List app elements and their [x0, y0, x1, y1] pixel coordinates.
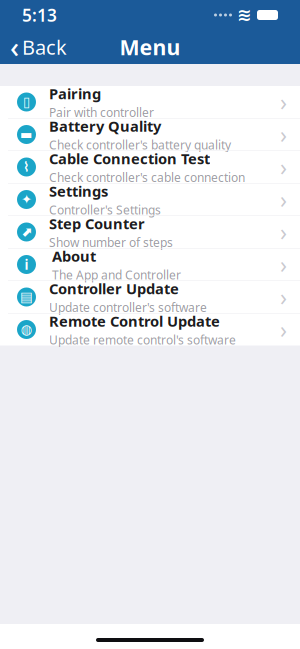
staticText: Controller Update: [49, 279, 179, 298]
staticText: Update controller's software: [49, 299, 207, 315]
button[interactable]: ◍: [0, 313, 300, 345]
staticText: ›: [280, 87, 287, 117]
staticText: ›: [280, 184, 287, 214]
staticText: ≋: [237, 5, 252, 25]
button[interactable]: ⌇: [0, 151, 300, 183]
staticText: ›: [280, 152, 287, 182]
staticText: ▤: [20, 289, 33, 304]
staticText: Check controller's cable connection: [49, 169, 245, 185]
staticText: ◍: [20, 322, 32, 337]
button[interactable]: ▬: [0, 118, 300, 150]
button[interactable]: ✦: [0, 183, 300, 215]
staticText: Menu: [119, 33, 180, 61]
staticText: ›: [280, 217, 287, 247]
staticText: ▬: [20, 127, 33, 142]
staticText: Step Counter: [49, 214, 145, 233]
staticText: Pair with controller: [49, 104, 154, 120]
staticText: ▯: [23, 94, 30, 109]
staticText: Settings: [49, 181, 108, 201]
staticText: ‹: [10, 28, 19, 66]
button[interactable]: ‹: [0, 23, 77, 71]
staticText: Back: [22, 34, 67, 60]
button[interactable]: i: [0, 248, 300, 280]
staticText: Controller's Settings: [49, 202, 161, 218]
staticText: Check controller's battery quality: [49, 137, 231, 153]
staticText: The App and Controller: [52, 267, 181, 283]
staticText: Cable Connection Test: [49, 149, 210, 168]
staticText: Battery Quality: [49, 116, 161, 136]
staticText: ›: [280, 119, 287, 149]
staticText: ›: [280, 282, 287, 312]
staticText: About: [52, 246, 96, 266]
staticText: ⌇: [23, 159, 30, 174]
staticText: ⬈: [21, 224, 32, 239]
staticText: Update remote control's software: [49, 332, 236, 348]
button[interactable]: ▯: [0, 86, 300, 118]
staticText: Remote Control Update: [49, 311, 220, 331]
staticText: Show number of steps: [49, 234, 173, 250]
staticText: Pairing: [49, 84, 101, 103]
staticText: 5:13: [22, 3, 57, 26]
staticText: ›: [280, 314, 287, 344]
staticText: ✦: [21, 192, 32, 207]
staticText: i: [24, 256, 28, 273]
staticText: ›: [280, 249, 287, 279]
button[interactable]: ▤: [0, 281, 300, 313]
button[interactable]: ⬈: [0, 216, 300, 248]
